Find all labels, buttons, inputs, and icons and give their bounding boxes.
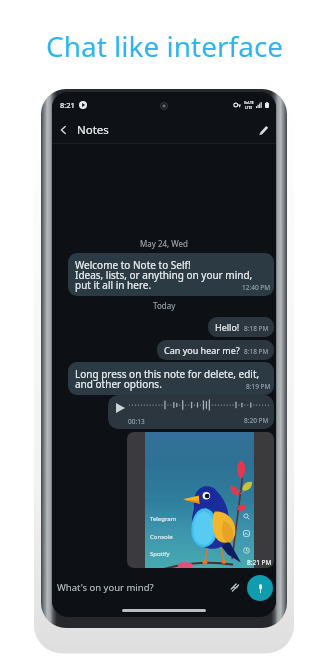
staticText: 00:13 xyxy=(128,417,145,426)
staticText: 8:19 PM xyxy=(246,382,271,391)
staticText: What's on your mind? xyxy=(57,581,154,594)
button[interactable]: Welcome to Note to Self! Ideas, lists, o… xyxy=(68,253,274,296)
staticText: LTE1 xyxy=(245,105,253,109)
button[interactable]: Can you hear me? xyxy=(157,340,274,360)
staticText: Hello! xyxy=(215,321,240,333)
button[interactable]: Play voice note xyxy=(108,395,274,429)
staticText: Chat like interface xyxy=(46,27,284,57)
staticText: 8:18 PM xyxy=(244,324,269,333)
button[interactable]: Hello! xyxy=(208,317,274,337)
button[interactable]: Long press on this note for delete, edit… xyxy=(68,362,274,395)
staticText: Telegram xyxy=(150,515,177,523)
staticText: 8:21 PM xyxy=(247,558,272,567)
button[interactable]: Edit xyxy=(255,121,273,139)
button[interactable]: Attach file xyxy=(227,580,243,596)
staticText: Spotify xyxy=(150,550,170,558)
staticText: Notes xyxy=(77,122,109,138)
staticText: May 24, Wed xyxy=(140,238,188,249)
button[interactable]: Back xyxy=(55,122,71,138)
staticText: 8:20 PM xyxy=(244,416,269,425)
staticText: Welcome to Note to Self! Ideas, lists, o… xyxy=(75,258,253,292)
staticText: Today xyxy=(153,300,176,311)
staticText: VoLTE xyxy=(244,100,254,104)
staticText: 8:18 PM xyxy=(244,347,269,356)
staticText: Can you hear me? xyxy=(164,344,240,356)
staticText: Console xyxy=(150,533,173,541)
button[interactable]: Photo attachment xyxy=(127,432,274,568)
staticText: Long press on this note for delete, edit… xyxy=(75,367,260,391)
staticText: 8:21 xyxy=(60,100,75,110)
staticText: 12:40 PM xyxy=(242,283,271,292)
button[interactable]: Record voice note xyxy=(247,575,273,601)
